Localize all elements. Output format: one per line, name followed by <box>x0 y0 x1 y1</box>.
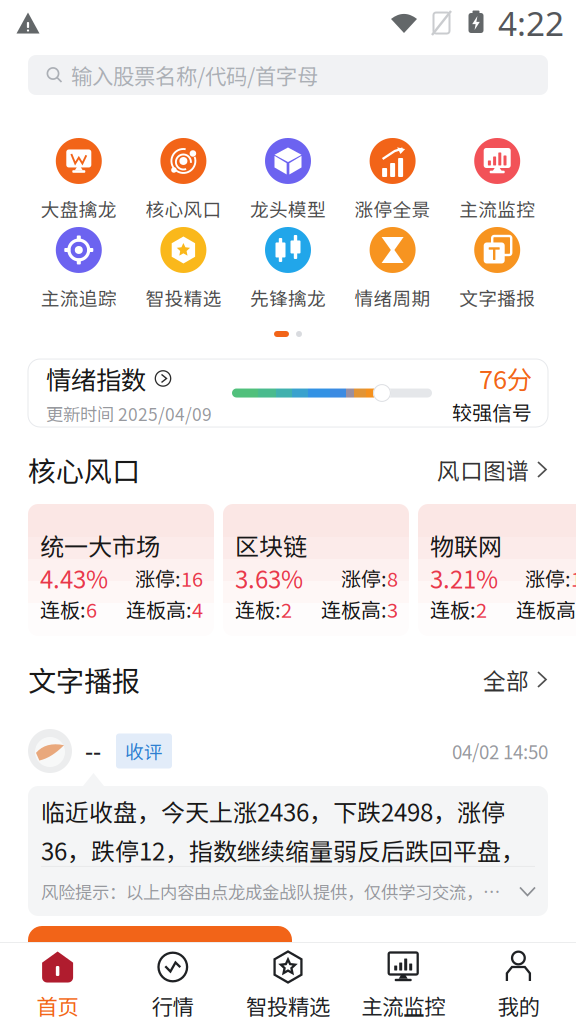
staticText: 涨停: <box>341 563 387 592</box>
button[interactable]: 情绪指数 <box>28 359 548 427</box>
staticText: 3.63% <box>235 561 303 595</box>
staticText: 区块链 <box>235 528 307 562</box>
button[interactable]: 核心风口 <box>131 143 236 217</box>
staticText: 连板高: <box>126 594 192 623</box>
staticText: 智投精选 <box>145 284 221 311</box>
staticText: 情绪指数 <box>46 360 146 397</box>
staticText: -- <box>85 734 101 768</box>
staticText: 风口图谱 <box>437 453 529 486</box>
staticText: 2 <box>281 594 292 623</box>
staticText: 大盘擒龙 <box>41 195 117 222</box>
button[interactable]: 我的 <box>461 943 576 1024</box>
button[interactable]: 物联网 <box>418 504 576 636</box>
button[interactable]: 文字播报 <box>445 232 549 306</box>
staticText: 龙头模型 <box>250 195 326 222</box>
button[interactable]: 行情 <box>115 943 230 1024</box>
button[interactable]: 全部 <box>483 663 546 696</box>
staticText: 风险提示：以上内容由点龙成金战队提供，仅供学习交流，… <box>41 879 500 904</box>
staticText: 物联网 <box>430 528 502 562</box>
staticText: 全部 <box>483 663 529 696</box>
button[interactable]: 主流追踪 <box>26 232 131 306</box>
staticText: 涨停全景 <box>355 195 431 222</box>
staticText: 4 <box>192 594 203 623</box>
staticText: 行情 <box>152 990 194 1021</box>
staticText: 文字播报 <box>28 659 140 700</box>
button[interactable]: 大盘擒龙 <box>26 143 131 217</box>
staticText: 2 <box>476 594 487 623</box>
button[interactable]: 首页 <box>0 943 115 1024</box>
staticText: 涨停: <box>525 563 571 592</box>
staticText: 核心风口 <box>145 195 221 222</box>
staticText: 首页 <box>37 990 79 1021</box>
staticText: 4.43% <box>40 561 108 595</box>
button[interactable]: 智投精选 <box>131 232 236 306</box>
staticText: ，今天上涨2436，下跌2498，涨停 <box>137 794 505 828</box>
staticText: 先锋擒龙 <box>250 284 326 311</box>
staticText: 16 <box>181 563 203 592</box>
staticText: 连板: <box>430 594 476 623</box>
button[interactable]: 区块链 <box>223 504 409 636</box>
staticText: 文字播报 <box>459 284 535 311</box>
staticText: 12 <box>571 563 576 592</box>
button[interactable]: 主流监控 <box>346 943 461 1024</box>
staticText: 连板: <box>235 594 281 623</box>
staticText: 3.21% <box>430 561 498 595</box>
staticText: 涨停: <box>135 563 181 592</box>
staticText: 输入股票名称/代码/首字母 <box>71 60 318 90</box>
staticText: 8 <box>387 563 398 592</box>
staticText: 6 <box>86 594 97 623</box>
staticText: 情绪周期 <box>355 284 431 311</box>
staticText: 04/02 14:50 <box>452 737 548 764</box>
button[interactable]: 风口图谱 <box>437 453 546 486</box>
button[interactable]: 统一大市场 <box>28 504 214 636</box>
button[interactable]: 主流监控 <box>445 143 549 217</box>
staticText: 主流监控 <box>361 990 445 1021</box>
staticText: 收评 <box>125 737 163 764</box>
button[interactable]: 智投精选 <box>230 943 346 1024</box>
staticText: 76分 <box>479 360 532 396</box>
staticText: 核心风口 <box>28 449 140 490</box>
staticText: 较强信号 <box>452 397 532 426</box>
button[interactable]: 涨停全景 <box>340 143 445 217</box>
staticText: 智投精选 <box>246 990 330 1021</box>
staticText: 临近收盘 <box>41 794 137 828</box>
button[interactable]: 情绪周期 <box>340 232 445 306</box>
staticText: 连板高: <box>321 594 387 623</box>
staticText: 主流追踪 <box>41 284 117 311</box>
button[interactable]: 输入股票名称/代码/首字母 <box>28 55 548 95</box>
staticText: 更新时间 2025/04/09 <box>46 401 212 426</box>
button[interactable]: 先锋擒龙 <box>236 232 340 306</box>
staticText: 我的 <box>497 990 539 1021</box>
button[interactable]: 龙头模型 <box>236 143 340 217</box>
staticText: 统一大市场 <box>40 528 160 562</box>
staticText: 连板高: <box>516 594 576 623</box>
staticText: 连板: <box>40 594 86 623</box>
staticText: 4:22 <box>498 1 564 45</box>
staticText: 36，跌停12，指数继续缩量弱反后跌回平盘， <box>41 833 525 867</box>
staticText: 主流监控 <box>459 195 535 222</box>
staticText: 3 <box>387 594 398 623</box>
